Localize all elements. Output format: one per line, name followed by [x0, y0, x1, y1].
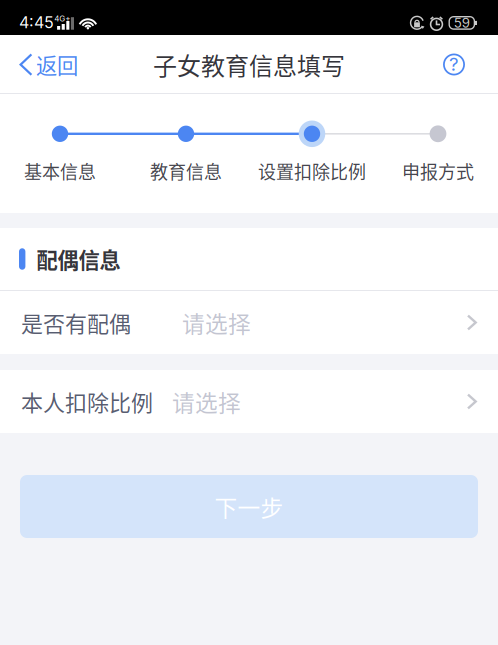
button[interactable]: 本人扣除比例 — [0, 370, 498, 433]
staticText: 申报方式 — [402, 158, 474, 184]
staticText: 基本信息 — [24, 158, 96, 184]
staticText: 设置扣除比例 — [258, 158, 366, 184]
staticText: 返回 — [36, 49, 78, 80]
staticText: 4G+ — [54, 14, 70, 23]
staticText: 教育信息 — [150, 158, 222, 184]
button[interactable]: 帮助 — [429, 35, 498, 93]
staticText: 59 — [454, 15, 470, 31]
staticText: 4:45 — [19, 13, 54, 32]
staticText: 子女教育信息填写 — [153, 47, 345, 82]
staticText: 配偶信息 — [36, 244, 120, 274]
staticText: 下一步 — [214, 490, 283, 523]
staticText: ? — [449, 53, 459, 75]
staticText: 是否有配偶 — [21, 307, 131, 338]
button[interactable]: 是否有配偶 — [0, 291, 498, 354]
staticText: 请选择 — [182, 306, 251, 339]
button[interactable]: 返回 — [0, 35, 92, 93]
button[interactable]: 下一步 — [20, 475, 478, 538]
staticText: 请选择 — [172, 385, 241, 418]
staticText: 本人扣除比例 — [21, 386, 153, 417]
